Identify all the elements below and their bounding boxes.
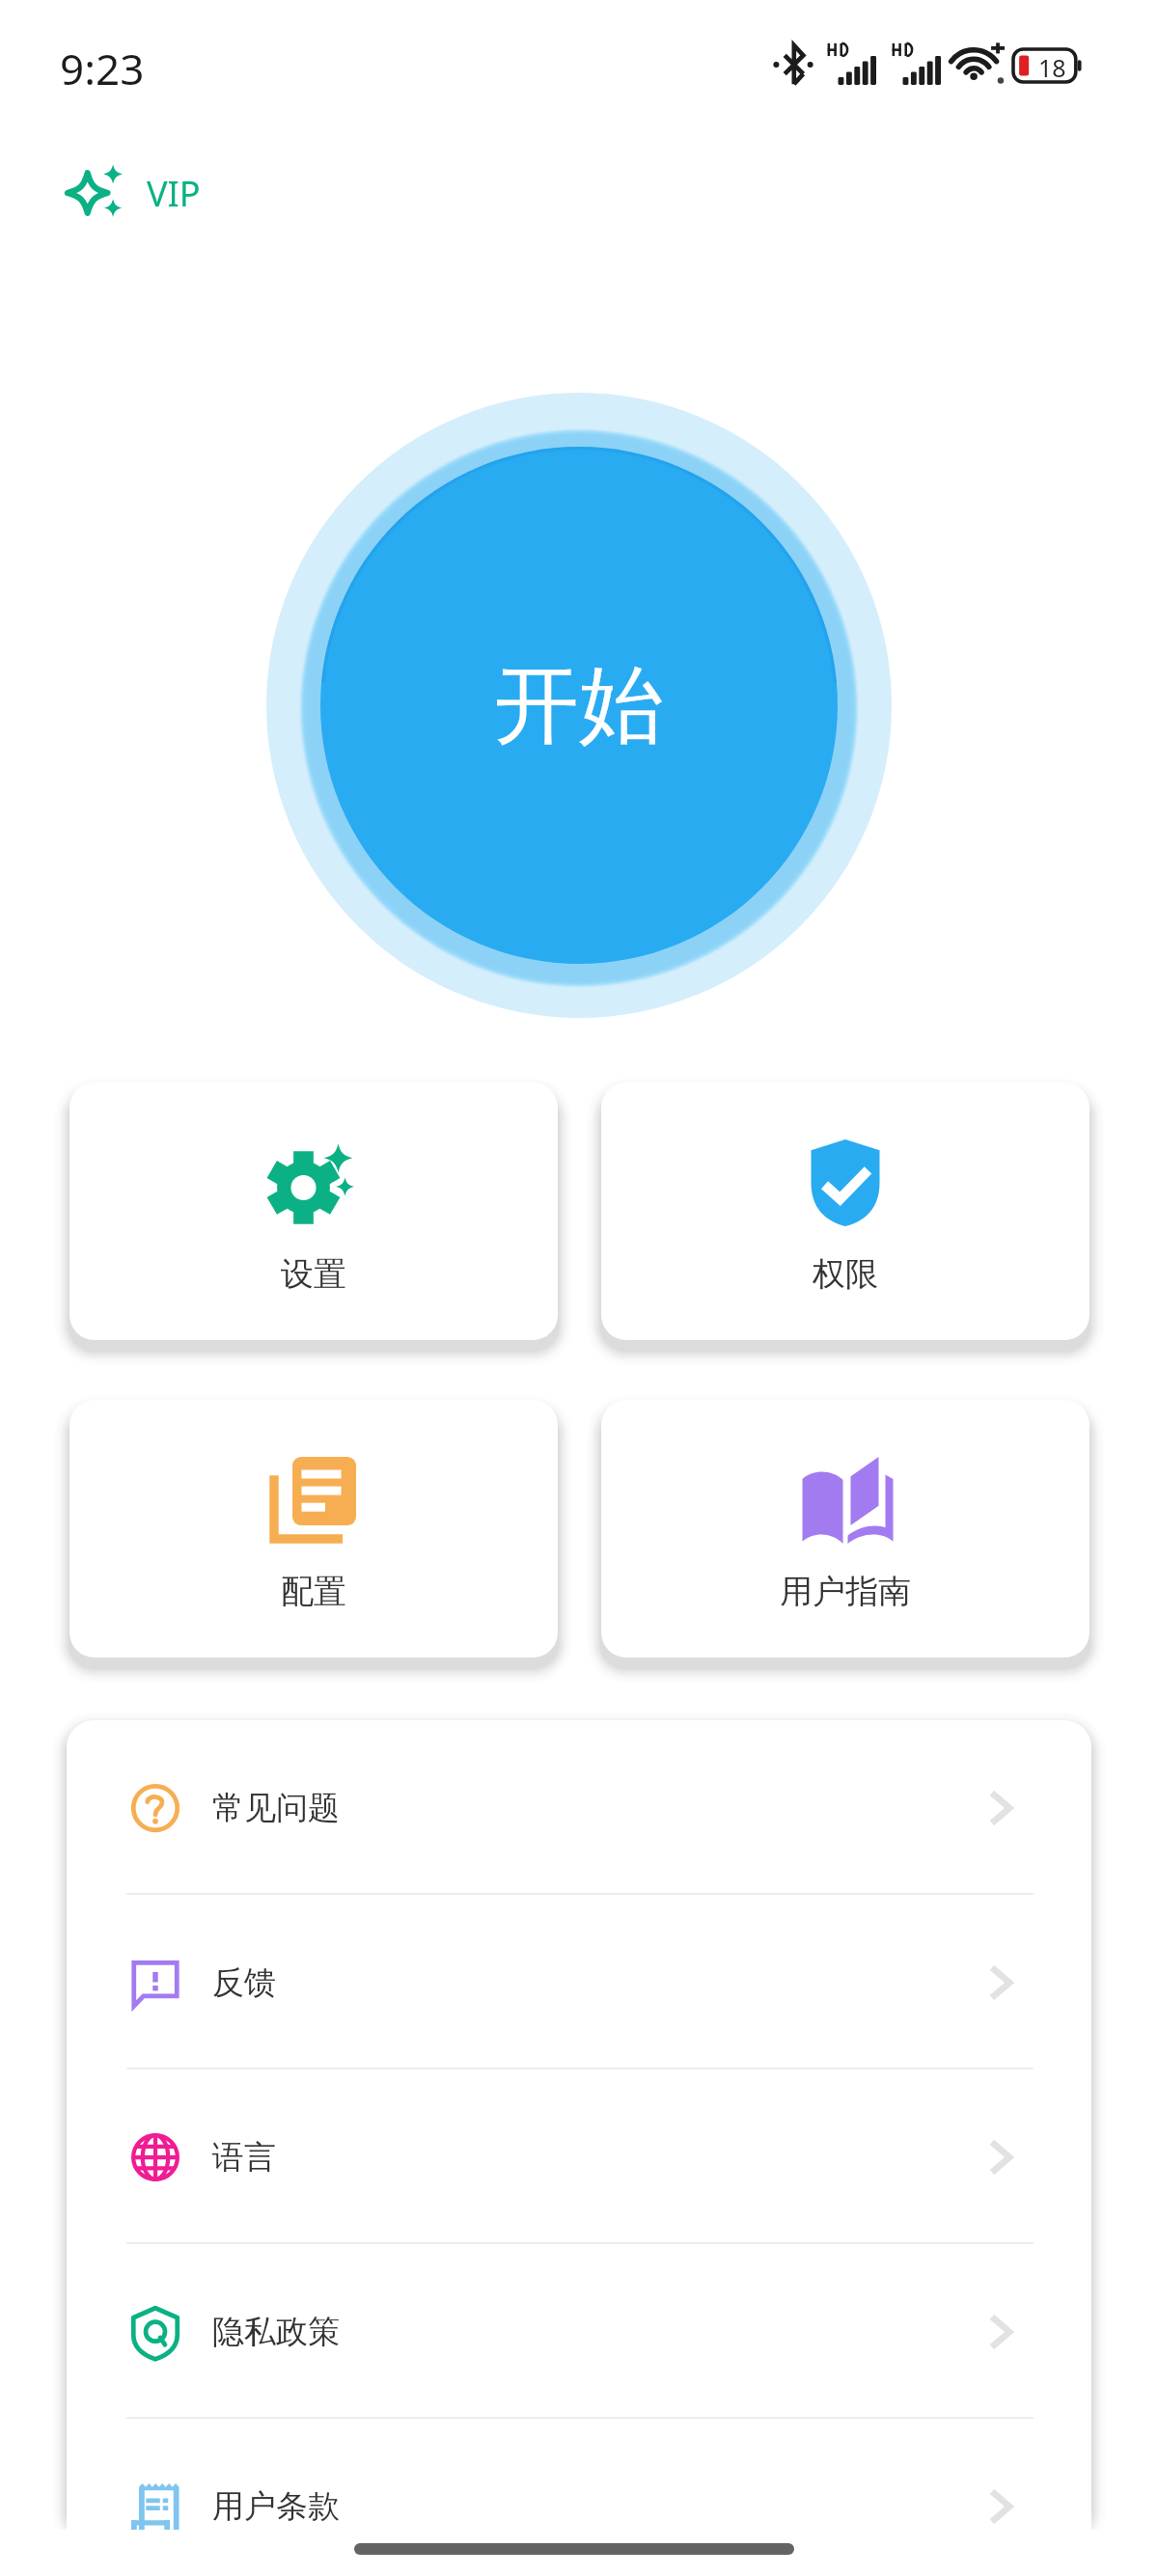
staticText: VIP: [147, 170, 201, 217]
button[interactable]: User guide: [601, 1400, 1089, 1658]
staticText: 配置: [281, 1571, 346, 1612]
button[interactable]: Permissions: [601, 1082, 1089, 1340]
button[interactable]: 反馈: [67, 1895, 1091, 2069]
staticText: 9:23: [60, 40, 145, 97]
staticText: 反馈: [212, 1962, 276, 2003]
button[interactable]: 用户条款: [67, 2419, 1091, 2530]
staticText: 用户指南: [780, 1571, 911, 1612]
staticText: 权限: [813, 1253, 878, 1295]
staticText: 设置: [281, 1253, 346, 1295]
staticText: 18: [1038, 51, 1066, 84]
button[interactable]: 语言: [67, 2069, 1091, 2244]
button[interactable]: Start: [320, 447, 838, 964]
staticText: 隐私政策: [212, 2312, 340, 2352]
staticText: 语言: [212, 2137, 276, 2178]
staticText: 常见问题: [212, 1788, 340, 1828]
button[interactable]: VIP: [58, 154, 210, 232]
button[interactable]: Settings: [69, 1082, 558, 1340]
button[interactable]: 隐私政策: [67, 2244, 1091, 2419]
staticText: 开始: [494, 652, 664, 759]
staticText: 用户条款: [212, 2486, 340, 2527]
button[interactable]: Configuration: [69, 1400, 558, 1658]
button[interactable]: 常见问题: [67, 1720, 1091, 1895]
